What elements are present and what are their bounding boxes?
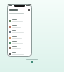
button[interactable]: [7, 35, 32, 40]
button[interactable]: [7, 18, 32, 23]
button[interactable]: [7, 29, 32, 34]
button[interactable]: [7, 45, 32, 50]
button[interactable]: [7, 24, 32, 29]
button[interactable]: [7, 40, 32, 45]
button[interactable]: [7, 51, 32, 56]
